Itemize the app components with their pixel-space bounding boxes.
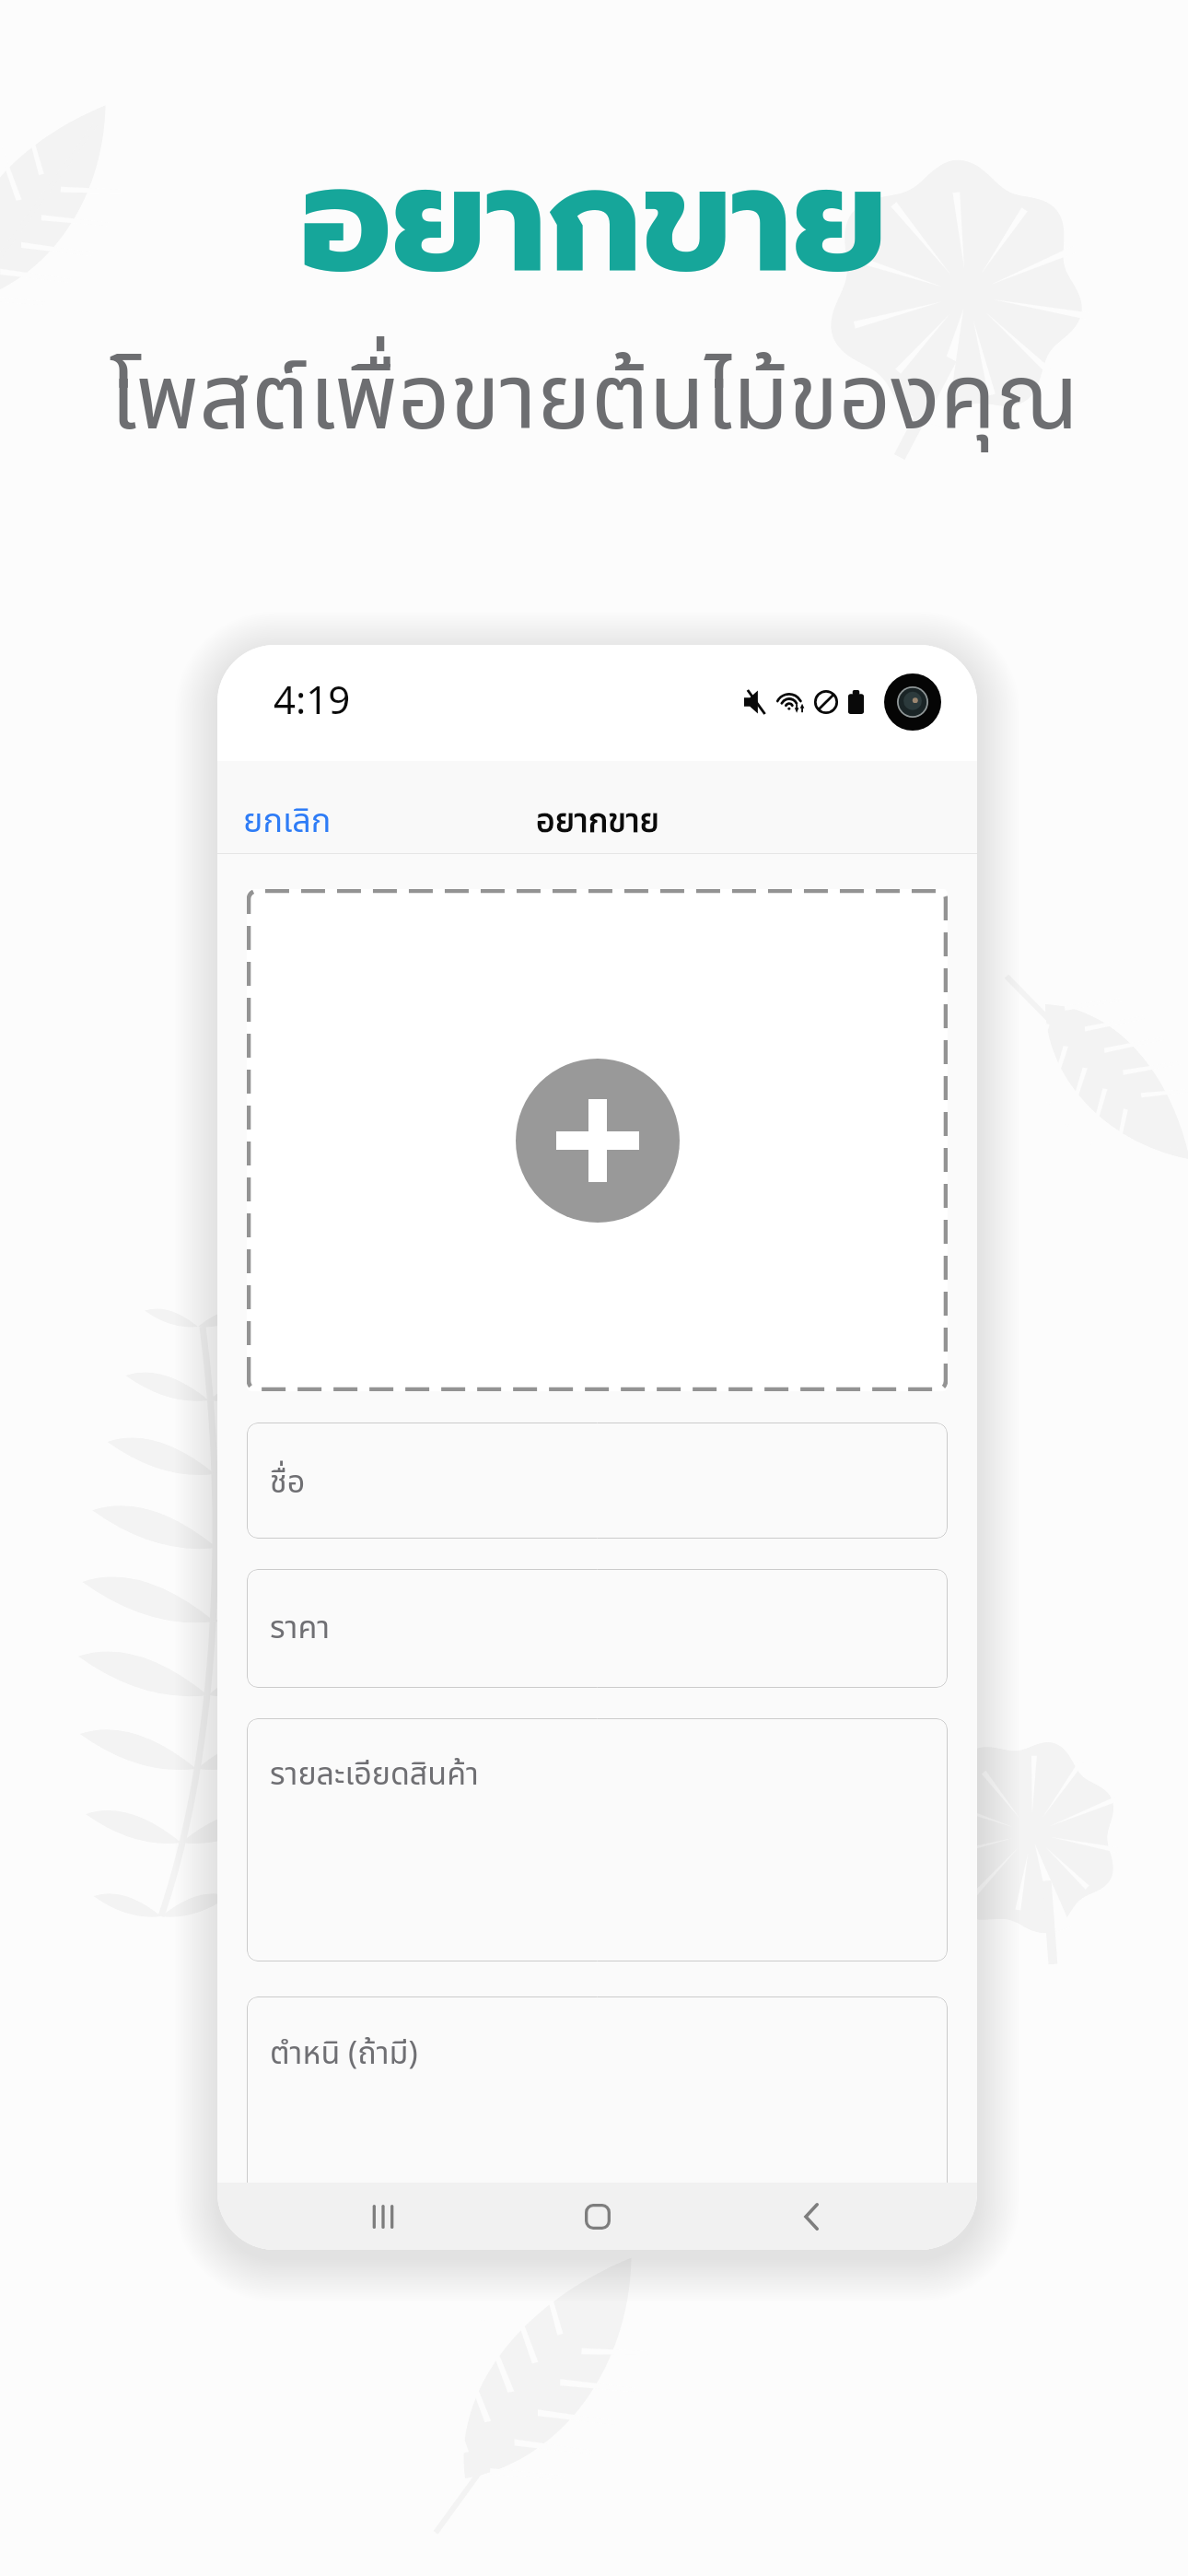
- staticText: อยากขาย: [0, 111, 1188, 332]
- staticText: โพสต์เพื่อขายต้นไม้ของคุณ: [0, 332, 1188, 470]
- staticText: ชื่อ: [270, 1459, 306, 1506]
- button[interactable]: Add photo: [247, 889, 948, 1391]
- staticText: รายละเอียดสินค้า: [270, 1751, 479, 1798]
- staticText: ตำหนิ (ถ้ามี): [270, 2031, 418, 2078]
- button[interactable]: ตำหนิ (ถ้ามี): [247, 1996, 948, 2183]
- button[interactable]: ยกเลิก: [217, 790, 348, 854]
- staticText: ราคา: [270, 1605, 331, 1652]
- button[interactable]: Back: [705, 2183, 919, 2250]
- staticText: ยกเลิก: [243, 797, 332, 847]
- button[interactable]: Home: [490, 2183, 705, 2250]
- button[interactable]: ชื่อ: [247, 1423, 948, 1539]
- button[interactable]: Recents: [275, 2183, 490, 2250]
- button[interactable]: รายละเอียดสินค้า: [247, 1718, 948, 1961]
- staticText: 4:19: [274, 673, 351, 731]
- staticText: อยากขาย: [536, 797, 659, 847]
- button[interactable]: ราคา: [247, 1569, 948, 1688]
